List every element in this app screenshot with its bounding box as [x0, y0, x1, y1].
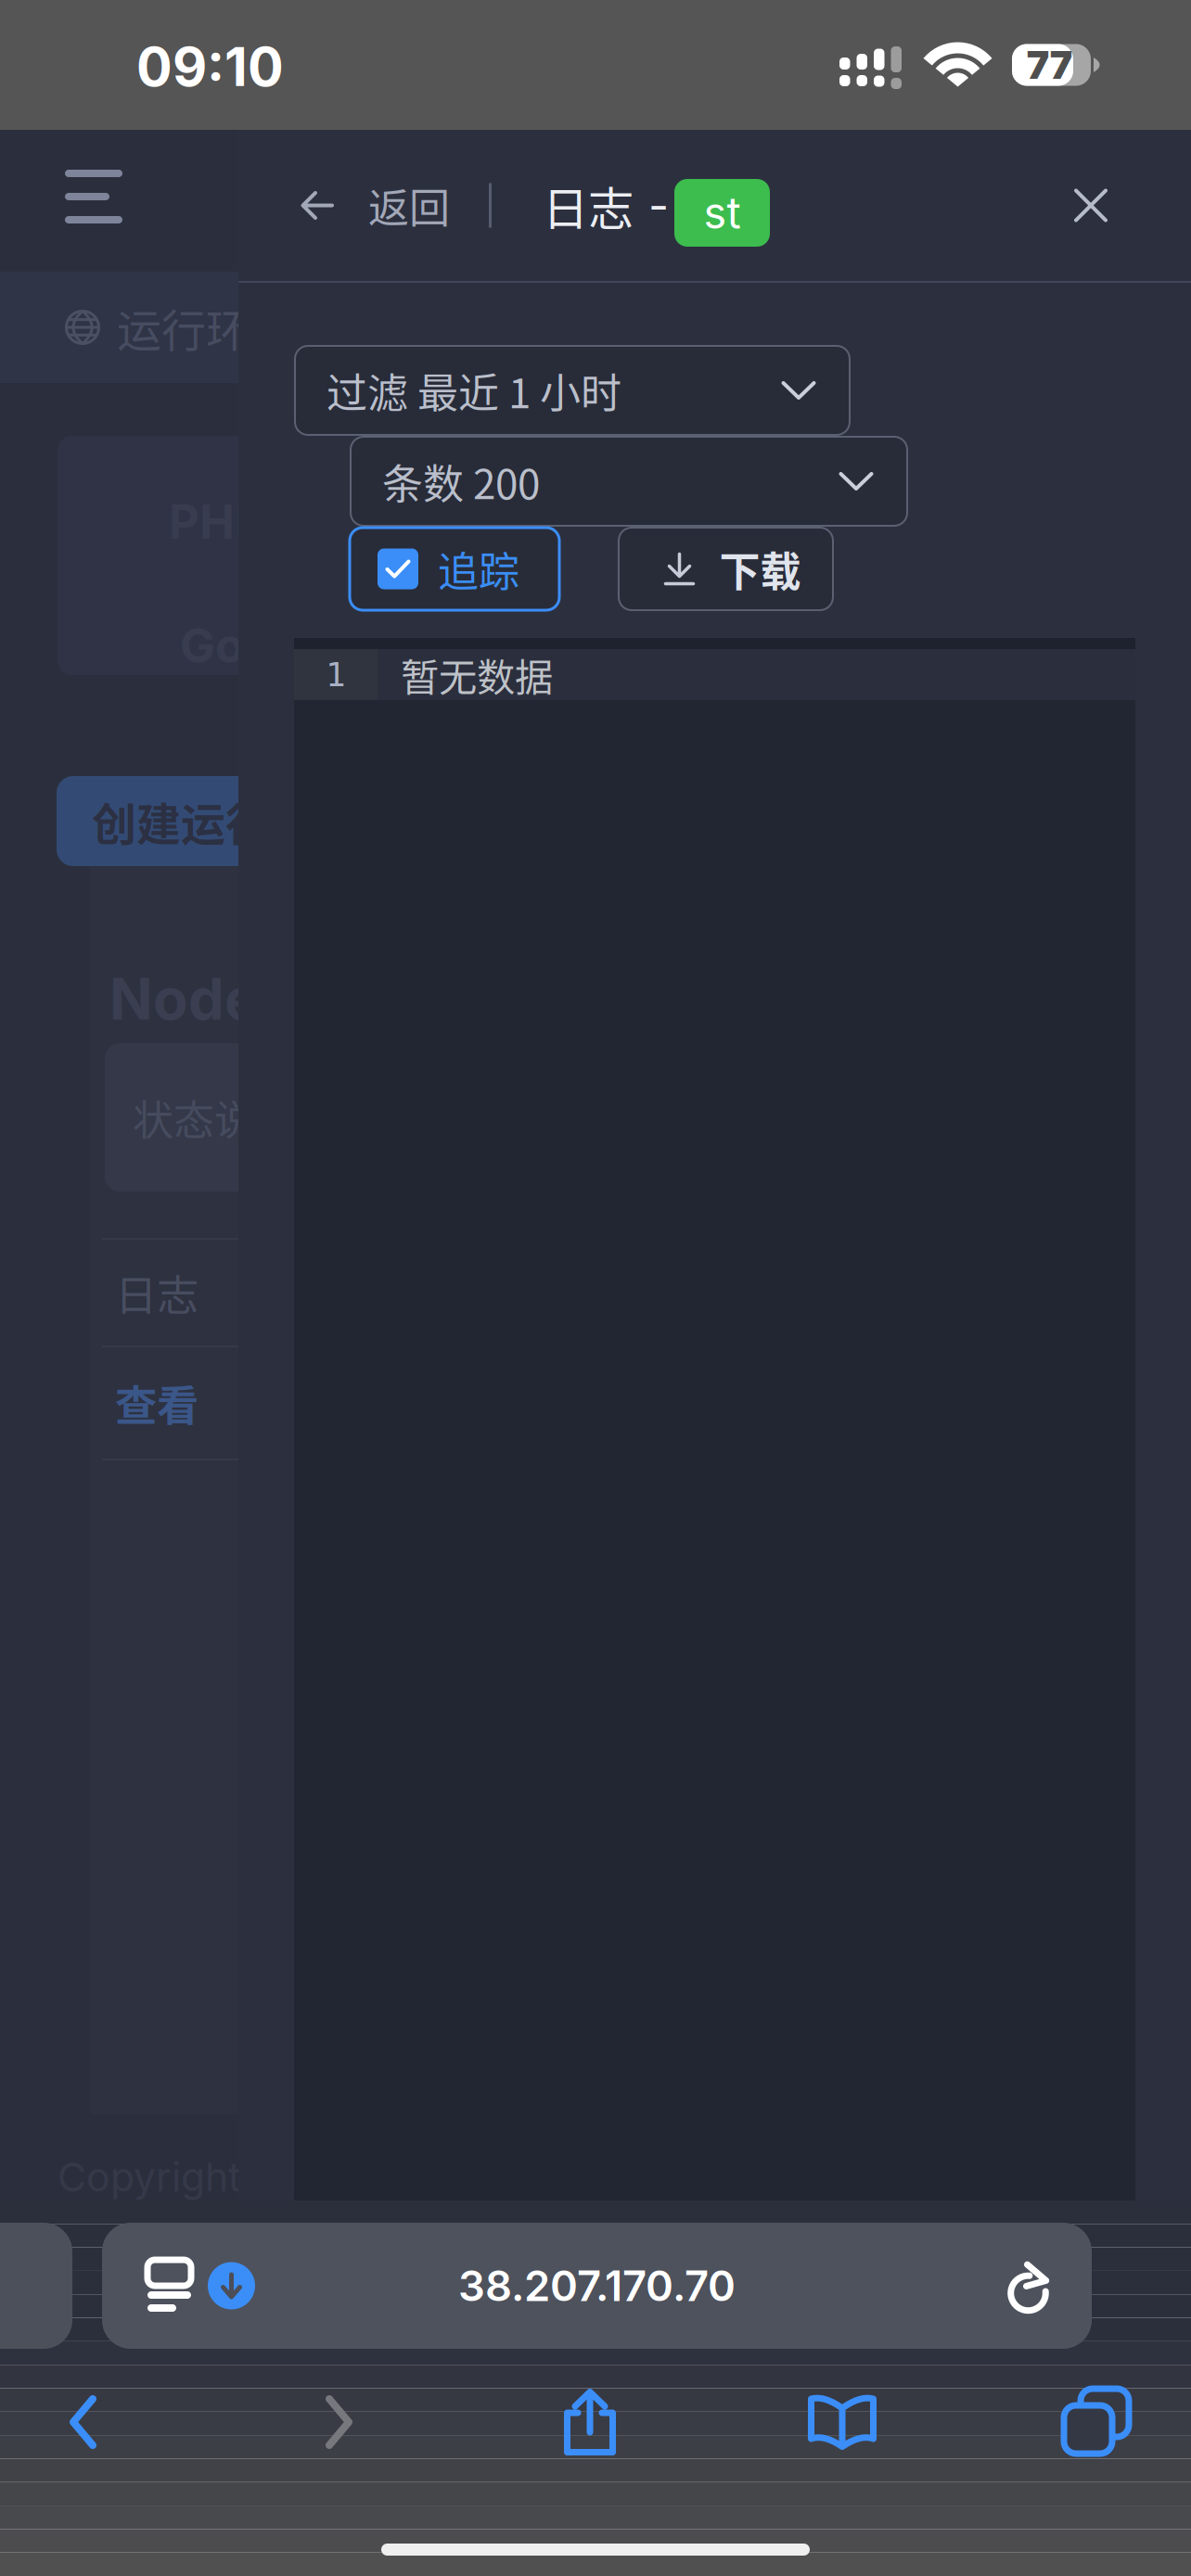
button[interactable]: 关闭 [1041, 155, 1141, 255]
staticText: 日志 [543, 172, 634, 238]
staticText: 返回 [368, 176, 450, 235]
staticText: 日志 [115, 1262, 198, 1323]
staticText: 09:10 [136, 35, 284, 99]
button[interactable]: 刷新 [980, 2223, 1092, 2349]
button[interactable]: 查看 [102, 1347, 260, 1459]
staticText: 条数 200 [382, 452, 540, 511]
staticText: 创建运行环境 [92, 789, 359, 853]
staticText: 运行环境 [117, 295, 295, 360]
staticText: 77 [1027, 42, 1072, 88]
button[interactable]: 追踪 [350, 528, 559, 610]
staticText: Copyright © [58, 2153, 288, 2201]
button[interactable]: 页面设置 [102, 2223, 277, 2349]
button[interactable]: 菜单 [65, 170, 122, 223]
staticText: 暂无数据 [401, 647, 553, 702]
staticText: 38.207.170.70 [458, 2260, 736, 2311]
staticText: 过滤 最近 1 小时 [327, 361, 621, 420]
button[interactable]: 分享 [507, 2372, 672, 2472]
staticText: PHP [169, 493, 265, 550]
button[interactable]: 条数 200 [351, 437, 907, 526]
staticText: 下载 [719, 539, 801, 598]
button[interactable]: 下载 [619, 528, 833, 610]
button[interactable]: 书签 [760, 2372, 925, 2472]
staticText: 查看 [115, 1373, 198, 1433]
staticText: 追踪 [438, 539, 519, 598]
button[interactable]: 标签页 [1013, 2372, 1178, 2472]
button[interactable]: 过滤 最近 1 小时 [295, 346, 850, 435]
button[interactable]: 前进 [257, 2372, 422, 2472]
button[interactable]: 返回 [238, 130, 487, 281]
staticText: st [704, 187, 741, 239]
button[interactable]: 后退 [0, 2372, 165, 2472]
staticText: - [648, 179, 669, 232]
staticText: 1 [326, 655, 346, 694]
staticText: Node [109, 964, 259, 1033]
staticText: 状态说明 [133, 1088, 296, 1147]
staticText: Go [180, 617, 244, 674]
